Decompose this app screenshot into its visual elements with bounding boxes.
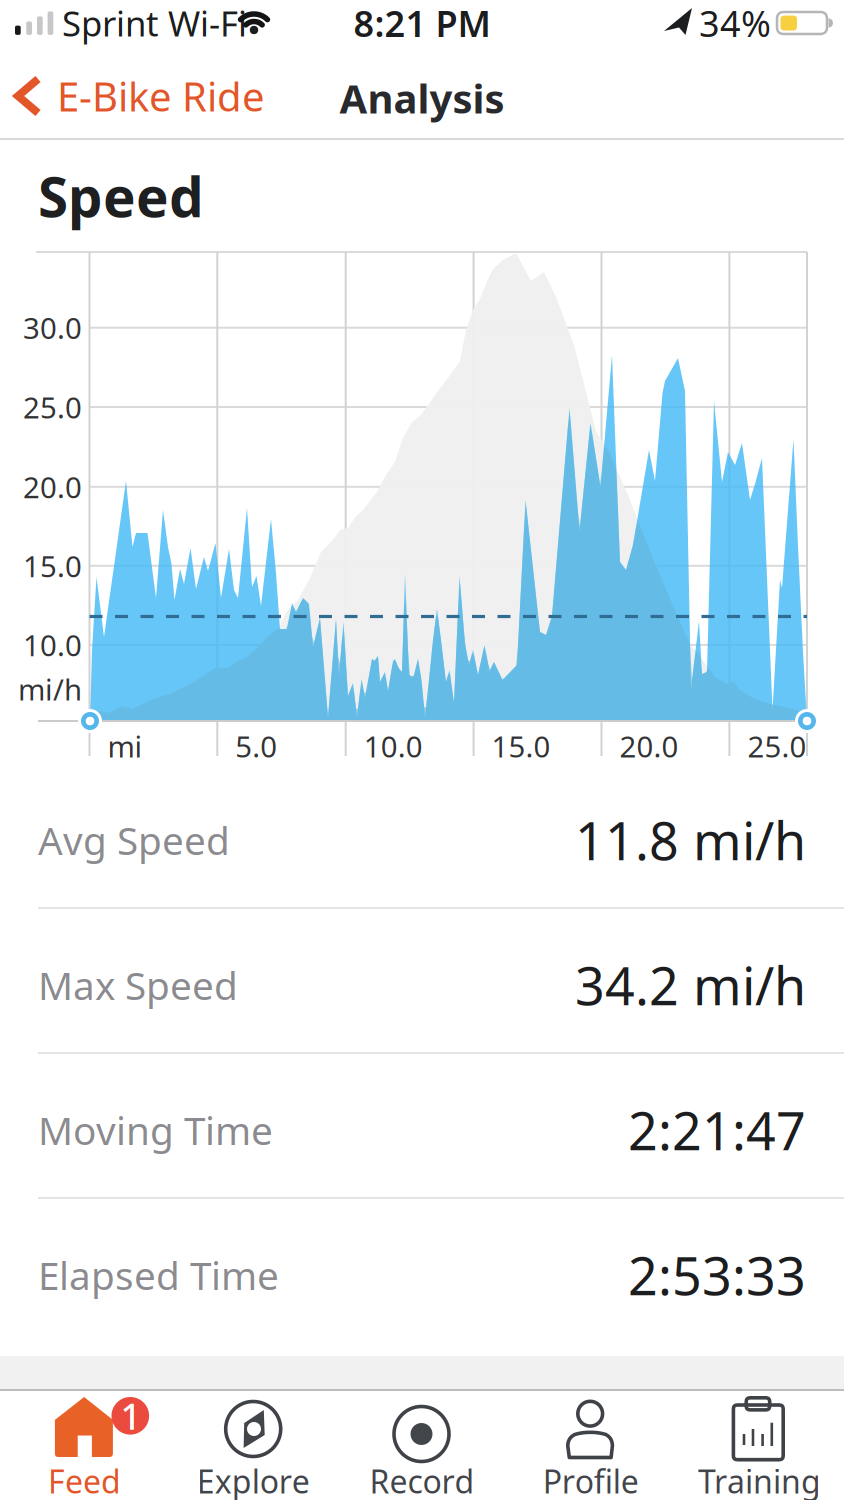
staticText: Feed	[48, 1460, 121, 1500]
button[interactable]: Training	[676, 1394, 844, 1500]
staticText: 2:53:33	[628, 1240, 806, 1310]
staticText: 15.0	[492, 726, 551, 765]
staticText: 10.0	[23, 625, 82, 664]
staticText: 15.0	[23, 546, 82, 585]
staticText: 30.0	[23, 308, 82, 347]
staticText: 8:21 PM	[353, 0, 490, 47]
button[interactable]: Record	[338, 1394, 506, 1500]
staticText: Speed	[38, 160, 204, 232]
staticText: Avg Speed	[38, 814, 230, 866]
button[interactable]: Profile	[507, 1394, 675, 1500]
staticText: mi/h	[18, 669, 82, 708]
staticText: mi	[107, 726, 142, 765]
staticText: Record	[369, 1460, 474, 1500]
staticText: 2:21:47	[628, 1095, 806, 1165]
staticText: Elapsed Time	[38, 1249, 279, 1301]
button[interactable]: E-Bike Ride	[0, 64, 320, 128]
staticText: 25.0	[23, 387, 82, 426]
staticText: 11.8 mi/h	[575, 805, 806, 875]
staticText: E-Bike Ride	[57, 69, 265, 122]
button[interactable]: 1	[0, 1394, 168, 1500]
staticText: 5.0	[235, 726, 277, 765]
staticText: Training	[698, 1460, 821, 1500]
staticText: 20.0	[619, 726, 678, 765]
staticText: 25.0	[747, 726, 806, 765]
button[interactable]: Explore	[169, 1394, 337, 1500]
staticText: 34%	[699, 0, 771, 47]
staticText: Sprint Wi-Fi	[62, 0, 247, 46]
staticText: 34.2 mi/h	[575, 950, 806, 1020]
staticText: Profile	[543, 1460, 639, 1500]
staticText: Max Speed	[38, 959, 238, 1011]
staticText: Analysis	[339, 71, 504, 124]
staticText: 20.0	[23, 467, 82, 506]
staticText: Explore	[197, 1460, 310, 1500]
staticText: 1	[120, 1392, 141, 1440]
staticText: 10.0	[364, 726, 423, 765]
staticText: Moving Time	[38, 1104, 273, 1156]
